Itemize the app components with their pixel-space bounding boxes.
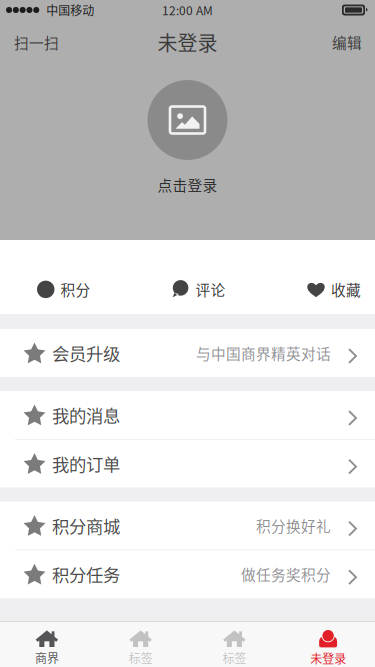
staticText: 商界 <box>35 649 59 666</box>
button[interactable]: 扫一扫 <box>0 20 73 64</box>
staticText: 标签 <box>129 649 153 666</box>
button[interactable]: 标签 <box>187 622 281 667</box>
staticText: 积分商城 <box>52 513 120 538</box>
staticText: 做任务奖积分 <box>241 564 331 585</box>
staticText: 评论 <box>195 279 225 300</box>
button[interactable]: 编辑 <box>319 20 375 64</box>
staticText: 点击登录 <box>157 174 217 195</box>
staticText: 扫一扫 <box>14 31 59 53</box>
staticText: 积分换好礼 <box>256 515 331 536</box>
button[interactable]: 未登录 <box>281 622 375 667</box>
button[interactable]: 我的订单 <box>0 440 375 488</box>
staticText: 中国移动 <box>46 1 94 19</box>
button[interactable]: 积分 <box>37 240 90 314</box>
staticText: 会员升级 <box>52 340 120 366</box>
staticText: 与中国商界精英对话 <box>196 342 331 364</box>
button[interactable]: 点击登录 <box>0 64 375 240</box>
button[interactable]: 我的消息 <box>0 391 375 439</box>
button[interactable]: 收藏 <box>307 240 361 314</box>
button[interactable]: 标签 <box>94 622 188 667</box>
staticText: 积分 <box>60 279 90 300</box>
staticText: 编辑 <box>332 31 362 53</box>
staticText: 标签 <box>222 649 246 666</box>
staticText: 我的消息 <box>52 402 120 428</box>
staticText: 12:00 AM <box>162 1 213 19</box>
button[interactable]: 积分商城 <box>0 502 375 550</box>
staticText: 积分任务 <box>52 562 120 587</box>
button[interactable]: 会员升级 <box>0 329 375 377</box>
button[interactable]: 商界 <box>0 622 94 667</box>
staticText: 未登录 <box>157 27 217 56</box>
staticText: 收藏 <box>331 279 361 300</box>
button[interactable]: 评论 <box>172 240 225 314</box>
button[interactable]: 积分任务 <box>0 550 375 598</box>
staticText: 未登录 <box>310 649 346 667</box>
staticText: 我的订单 <box>52 451 120 476</box>
